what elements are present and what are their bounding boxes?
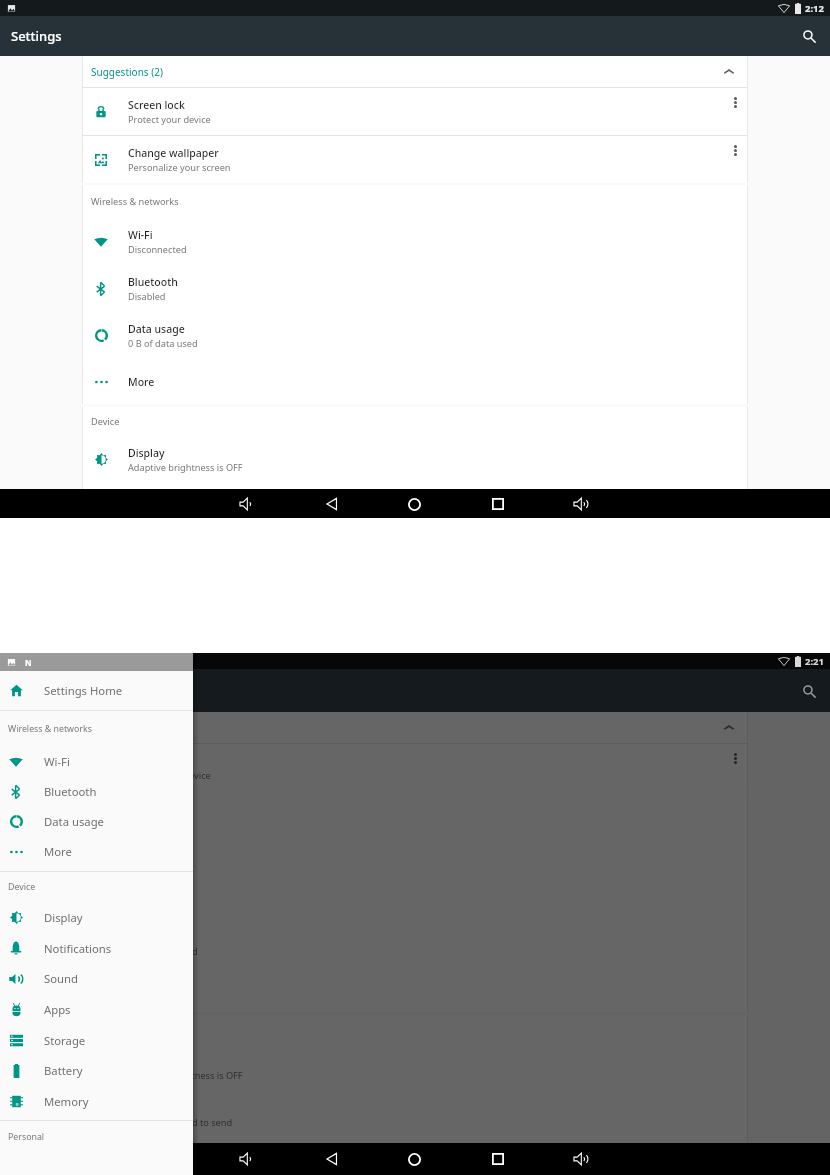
staticText: Protect your device [128,113,211,126]
button[interactable]: Volume up [570,1148,592,1170]
button[interactable]: Display [0,902,193,933]
button[interactable]: Bluetooth [0,776,193,807]
button[interactable]: Recents [487,1148,509,1170]
button[interactable]: Home [403,493,425,515]
button[interactable]: More [82,967,748,1012]
button[interactable]: Back [321,1148,343,1170]
staticText: 0 B of data used [128,945,198,958]
button[interactable]: Recents [487,493,509,515]
staticText: Display [44,910,83,925]
staticText: 2:21 [805,655,824,668]
staticText: Device [8,881,36,893]
button[interactable]: Battery [0,1055,193,1086]
button[interactable]: Bluetooth [82,265,748,312]
staticText: Adaptive brightness is OFF [128,461,243,474]
staticText: N [25,657,32,668]
staticText: Bluetooth [128,275,178,289]
staticText: More [128,375,155,389]
button[interactable]: Data usage [82,312,748,359]
staticText: Display [128,446,165,460]
staticText: Change wallpaper [128,146,219,160]
staticText: Settings Home [44,683,123,698]
staticText: 0 B of data used [128,337,198,350]
staticText: Suggestions (2) [91,65,163,79]
button[interactable]: More options [726,141,744,159]
staticText: Wireless & networks [91,195,179,208]
staticText: Data usage [128,322,185,336]
button[interactable]: Wi-Fi [82,218,748,265]
staticText: Wi-Fi [128,228,153,242]
staticText: Personal [8,1131,45,1143]
button[interactable]: Display [82,436,748,483]
button[interactable]: Wi-Fi [0,746,193,776]
staticText: Bluetooth [44,784,97,799]
button[interactable]: Volume down [236,1148,258,1170]
button[interactable]: Screen lock [82,744,748,791]
staticText: Notifications [44,941,112,956]
button[interactable]: Volume up [570,493,592,515]
button[interactable]: Storage [0,1025,193,1055]
staticText: Sound [44,971,78,986]
button[interactable]: Notifications [0,933,193,963]
staticText: Disconnected [128,243,187,256]
button[interactable]: Sound [0,963,193,994]
button[interactable]: Back [321,493,343,515]
button[interactable]: Wi-Fi [82,826,748,873]
staticText: Battery [44,1063,83,1078]
staticText: Wireless & networks [8,723,92,735]
staticText: Data usage [44,814,104,829]
button[interactable]: More options [726,93,744,111]
staticText: Adaptive brightness is OFF [128,1069,243,1082]
button[interactable]: Screen lock [82,88,748,135]
button[interactable]: More options [726,749,744,767]
staticText: Device [91,415,120,428]
staticText: More [44,844,72,859]
staticText: Protect your device [128,769,211,782]
button[interactable]: More [82,359,748,404]
button[interactable]: Data usage [0,807,193,836]
staticText: Memory [44,1094,89,1109]
button[interactable]: Sound [82,1138,748,1143]
button[interactable]: Notifications [82,1091,748,1138]
button[interactable]: Bluetooth [82,873,748,920]
button[interactable]: Display [82,1044,748,1091]
staticText: Wi-Fi [44,754,70,769]
staticText: Screen lock [128,98,185,112]
staticText: Personalize your screen [128,161,231,174]
button[interactable]: Suggestions (2) [82,712,748,743]
staticText: Settings [11,27,62,45]
button[interactable]: Change wallpaper [82,136,748,183]
staticText: Apps [44,1002,71,1017]
button[interactable]: Memory [0,1086,193,1116]
button[interactable]: Search [797,679,821,703]
button[interactable]: Search [797,24,821,48]
button[interactable]: Apps [0,994,193,1025]
button[interactable]: Home [403,1148,425,1170]
button[interactable]: Suggestions (2) [82,56,748,87]
button[interactable]: Settings Home [0,671,193,710]
button[interactable]: Volume down [236,493,258,515]
staticText: Storage [44,1033,86,1048]
staticText: Disabled [128,290,166,303]
staticText: All apps allowed to send [128,1116,233,1129]
button[interactable]: More [0,836,193,867]
staticText: 2:12 [805,2,824,15]
button[interactable]: Data usage [82,920,748,967]
